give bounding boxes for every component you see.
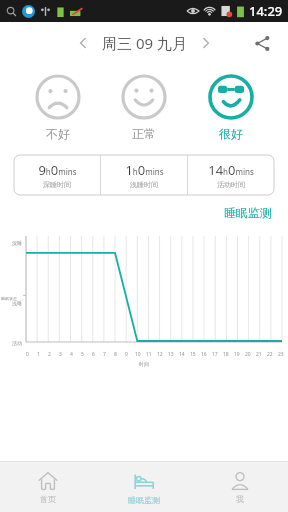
staticText: 活动	[12, 340, 22, 346]
staticText: 21	[256, 351, 262, 358]
staticText: 20	[245, 351, 251, 358]
staticText: 17	[212, 351, 218, 358]
staticText: 16	[201, 351, 207, 358]
staticText: 12	[157, 351, 163, 358]
staticText: 首页	[40, 494, 56, 504]
button[interactable]: 睡眠监测	[96, 462, 192, 512]
staticText: 深睡	[12, 240, 22, 246]
staticText: 3	[59, 351, 62, 358]
staticText: 22	[267, 351, 273, 358]
staticText: 23	[278, 351, 284, 358]
staticText: 1	[37, 351, 40, 358]
staticText: 正常	[132, 126, 156, 141]
staticText: 8	[114, 351, 117, 358]
staticText: 深睡时间	[43, 180, 71, 189]
staticText: 14	[179, 351, 185, 358]
button[interactable]: Share	[248, 29, 276, 57]
button[interactable]: 首页	[0, 462, 96, 512]
staticText: 周三 09 九月	[102, 33, 187, 53]
staticText: 我	[236, 494, 244, 504]
staticText: 15	[190, 351, 196, 358]
staticText: 9h0mins	[38, 161, 77, 179]
staticText: 18	[223, 351, 229, 358]
button[interactable]: 9h0mins	[14, 155, 274, 195]
staticText: 9	[125, 351, 128, 358]
staticText: 19	[234, 351, 240, 358]
staticText: 14:29	[249, 2, 283, 20]
staticText: 14h0mins	[208, 161, 254, 179]
staticText: 13	[168, 351, 174, 358]
button[interactable]: 很好	[202, 72, 260, 143]
button[interactable]: 我	[192, 462, 288, 512]
button[interactable]: Next day	[193, 30, 219, 56]
staticText: 浅睡时间	[130, 180, 158, 189]
staticText: 11	[146, 351, 152, 358]
button[interactable]: 正常	[115, 72, 173, 143]
staticText: 2	[48, 351, 51, 358]
staticText: 睡眠状态	[1, 296, 17, 301]
staticText: 7	[103, 351, 106, 358]
staticText: 时间	[139, 361, 149, 367]
staticText: 睡眠监测	[128, 495, 160, 505]
staticText: 0	[26, 351, 29, 358]
button[interactable]: 不好	[29, 72, 87, 143]
staticText: 很好	[219, 126, 243, 141]
staticText: 10	[135, 351, 141, 358]
staticText: 6	[92, 351, 95, 358]
staticText: 不好	[46, 126, 70, 141]
staticText: 1h0mins	[125, 161, 164, 179]
staticText: 4	[70, 351, 73, 358]
staticText: 活动时间	[217, 180, 245, 189]
button[interactable]: Previous day	[70, 30, 96, 56]
staticText: 5	[81, 351, 84, 358]
staticText: 浅睡	[12, 300, 22, 306]
staticText: 睡眠监测	[224, 205, 272, 220]
